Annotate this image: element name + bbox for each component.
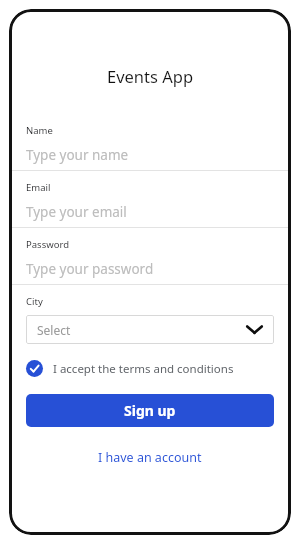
button[interactable]: Sign up bbox=[26, 394, 274, 427]
staticText: I have an account bbox=[98, 449, 202, 466]
staticText: Password bbox=[26, 238, 69, 251]
staticText: I accept the terms and conditions bbox=[53, 361, 234, 377]
staticText: Type your password bbox=[26, 260, 154, 278]
button[interactable]: I have an account bbox=[9, 449, 291, 466]
staticText: Events App bbox=[107, 65, 194, 87]
button[interactable]: Password bbox=[9, 228, 291, 284]
button[interactable]: Select bbox=[26, 315, 274, 344]
staticText: City bbox=[26, 295, 43, 308]
button[interactable]: I accept the terms and conditions bbox=[26, 360, 274, 377]
button[interactable]: Name bbox=[9, 114, 291, 170]
staticText: Sign up bbox=[124, 401, 176, 420]
staticText: Email bbox=[26, 181, 51, 194]
staticText: Type your email bbox=[26, 203, 127, 221]
staticText: Name bbox=[26, 124, 53, 137]
staticText: Type your name bbox=[26, 146, 129, 164]
button[interactable]: Email bbox=[9, 171, 291, 227]
staticText: Select bbox=[37, 322, 71, 338]
